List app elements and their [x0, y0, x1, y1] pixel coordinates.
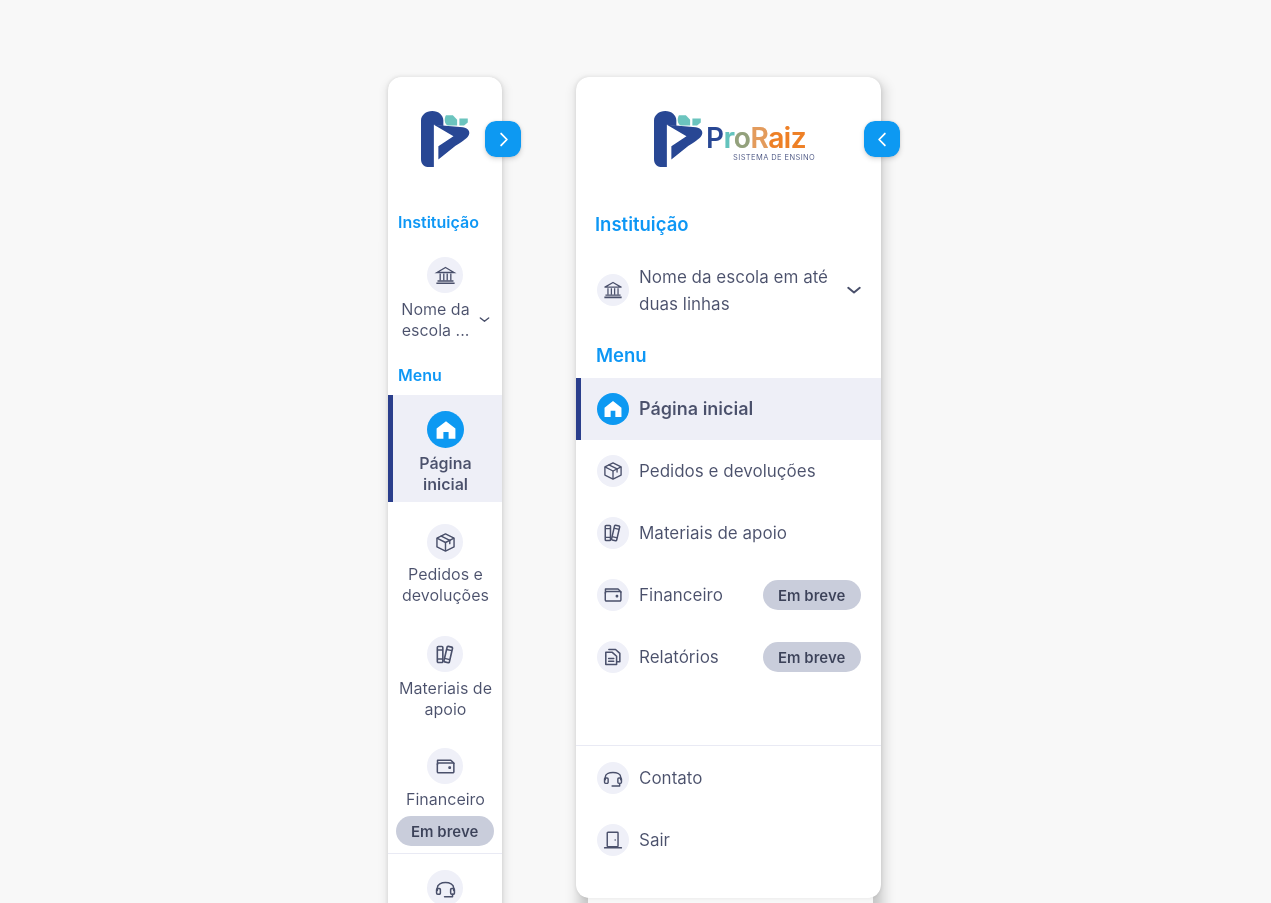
button[interactable]: Pedidos e devoluções: [388, 502, 502, 615]
staticText: Financeiro: [639, 585, 723, 606]
staticText: Pedidos e devoluções: [402, 564, 489, 605]
button[interactable]: Financeiro: [388, 728, 502, 853]
staticText: Nome da escola em até duas linhas: [639, 267, 839, 314]
staticText: Página inicial: [639, 398, 754, 420]
staticText: Relatórios: [639, 647, 719, 668]
button[interactable]: Nome da escola ...: [388, 247, 502, 342]
staticText: Em breve: [778, 586, 846, 604]
staticText: Em breve: [411, 822, 479, 840]
button[interactable]: Materiais de apoio: [576, 502, 881, 564]
button[interactable]: Financeiro: [576, 564, 881, 626]
button[interactable]: Expand navigation menu: [485, 121, 521, 157]
staticText: Página inicial: [419, 453, 472, 494]
button[interactable]: Materiais de apoio: [388, 615, 502, 728]
staticText: Materiais de apoio: [639, 523, 787, 544]
staticText: Sair: [639, 830, 670, 851]
staticText: Menu: [398, 365, 442, 384]
button[interactable]: Contato: [576, 747, 881, 809]
staticText: Financeiro: [406, 789, 485, 808]
staticText: Nome da escola ...: [397, 299, 474, 340]
staticText: Instituição: [398, 212, 479, 231]
staticText: Instituição: [595, 213, 689, 235]
button[interactable]: Página inicial: [576, 378, 881, 440]
button[interactable]: Contato: [388, 854, 502, 903]
staticText: Em breve: [778, 648, 846, 666]
staticText: ProRaiz: [706, 121, 807, 155]
staticText: Contato: [639, 768, 703, 789]
button[interactable]: Pedidos e devoluções: [576, 440, 881, 502]
button[interactable]: Página inicial: [388, 395, 502, 502]
button[interactable]: Nome da escola em até duas linhas: [576, 260, 881, 320]
staticText: Materiais de apoio: [399, 678, 492, 719]
staticText: Pedidos e devoluções: [639, 461, 816, 482]
button[interactable]: Sair: [576, 809, 881, 871]
button[interactable]: Relatórios: [576, 626, 881, 688]
button[interactable]: Collapse navigation menu: [864, 121, 900, 157]
staticText: SISTEMA DE ENSINO: [733, 153, 816, 162]
staticText: Menu: [596, 344, 647, 366]
